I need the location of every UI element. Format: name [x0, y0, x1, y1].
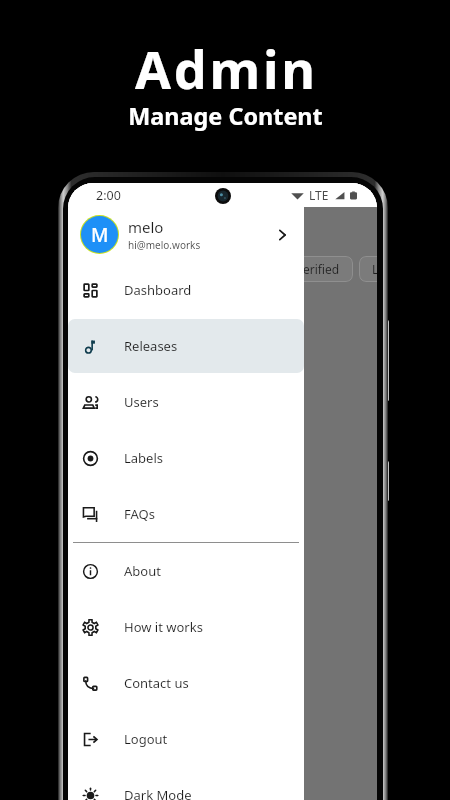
button[interactable]: How it works: [68, 600, 304, 654]
staticText: About: [124, 562, 161, 580]
staticText: Contact us: [124, 674, 189, 692]
staticText: FAQs: [124, 505, 155, 523]
staticText: Logout: [124, 730, 168, 748]
button[interactable]: M: [68, 207, 304, 262]
button[interactable]: Dashboard: [68, 263, 304, 317]
staticText: How it works: [124, 618, 203, 636]
staticText: melo: [128, 217, 164, 237]
staticText: LTE: [309, 187, 329, 203]
staticText: Users: [124, 393, 159, 411]
staticText: Labels: [124, 449, 164, 467]
other: Open profile: [275, 227, 291, 243]
other: Volume: [385, 320, 389, 401]
other: Power: [385, 461, 389, 501]
button[interactable]: Users: [68, 375, 304, 429]
button[interactable]: Verified: [283, 256, 353, 282]
button[interactable]: Dark Mode: [68, 768, 304, 800]
staticText: Manage Content: [128, 100, 323, 132]
staticText: Releases: [124, 337, 178, 355]
staticText: Dashboard: [124, 281, 192, 299]
button[interactable]: Releases: [68, 319, 304, 373]
staticText: Admin: [135, 33, 318, 104]
staticText: M: [91, 222, 109, 248]
staticText: Likes: [372, 261, 377, 277]
button[interactable]: FAQs: [68, 487, 304, 541]
staticText: Verified: [296, 261, 340, 277]
button[interactable]: Contact us: [68, 656, 304, 710]
button[interactable]: Labels: [68, 431, 304, 485]
button[interactable]: About: [68, 544, 304, 598]
button[interactable]: Logout: [68, 712, 304, 766]
button[interactable]: Likes: [359, 256, 377, 282]
staticText: 2:00: [96, 187, 121, 204]
staticText: Dark Mode: [124, 786, 192, 800]
staticText: hi@melo.works: [128, 238, 201, 252]
